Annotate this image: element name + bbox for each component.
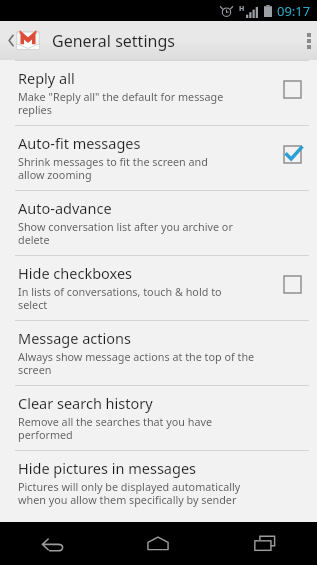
staticText: Reply all [18,68,75,88]
staticText: Remove all the searches that you have pe… [18,414,213,442]
button[interactable]: Auto-fit messages [0,126,317,190]
staticText: In lists of conversations, touch & hold … [18,284,222,312]
button[interactable]: Auto-advance [0,191,317,255]
button[interactable]: Hide checkboxes [0,256,317,320]
staticText: Auto-fit messages [18,133,141,153]
button[interactable]: Auto-fit messages, checked [277,139,307,169]
button[interactable]: Home [105,522,211,565]
staticText: Show conversation list after you archive… [18,219,233,247]
button[interactable]: Clear search history [0,386,317,450]
staticText: Clear search history [18,393,153,413]
staticText: Auto-advance [18,198,112,218]
staticText: Pictures will only be displayed automati… [18,479,241,507]
staticText: H [239,4,245,14]
staticText: Make "Reply all" the default for message… [18,89,224,117]
button[interactable]: Message actions [0,321,317,385]
staticText: General settings [52,30,175,52]
staticText: 09:17 [277,2,311,20]
button[interactable]: Reply all [0,61,317,125]
staticText: Hide checkboxes [18,263,133,283]
staticText: Message actions [18,328,131,348]
button[interactable]: Hide checkboxes, not checked [277,269,307,299]
button[interactable]: Back [0,522,105,565]
button[interactable]: Reply all, not checked [277,74,307,104]
button[interactable]: Recent apps [211,522,317,565]
staticText: Always show message actions at the top o… [18,349,255,377]
button[interactable]: Hide pictures in messages [0,451,317,515]
staticText: Hide pictures in messages [18,458,197,478]
button[interactable]: Navigate up [5,28,42,53]
staticText: Shrink messages to fit the screen and al… [18,154,208,182]
button[interactable]: More options [300,21,317,60]
